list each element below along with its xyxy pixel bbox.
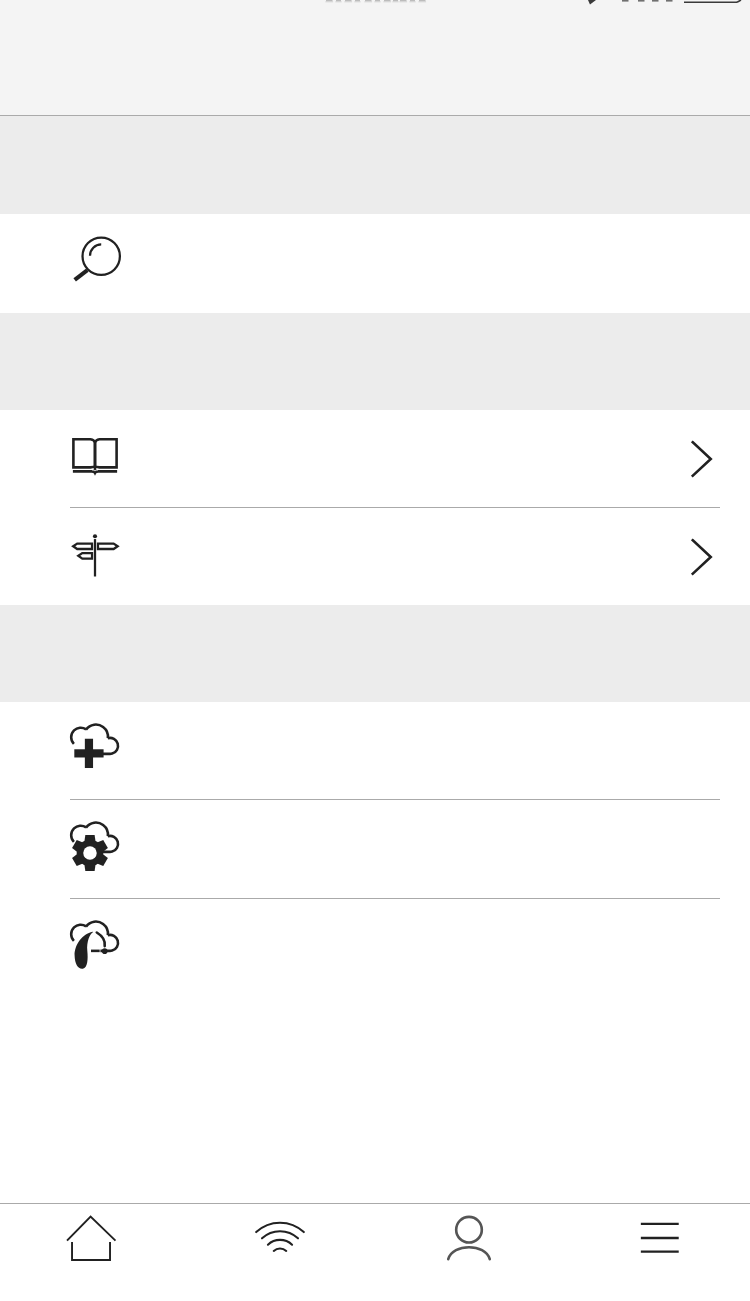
button[interactable]: Menu xyxy=(562,1204,750,1301)
other: Open xyxy=(670,532,720,582)
button[interactable] xyxy=(0,702,750,799)
button[interactable]: Home xyxy=(0,1204,187,1301)
button[interactable] xyxy=(0,800,750,898)
button[interactable] xyxy=(0,214,750,313)
button[interactable] xyxy=(0,899,750,997)
button[interactable]: Profile xyxy=(374,1204,562,1301)
button[interactable]: Open xyxy=(0,410,750,507)
other: Open xyxy=(670,434,720,484)
button[interactable]: Open xyxy=(0,508,750,605)
button[interactable]: Network xyxy=(187,1204,374,1301)
